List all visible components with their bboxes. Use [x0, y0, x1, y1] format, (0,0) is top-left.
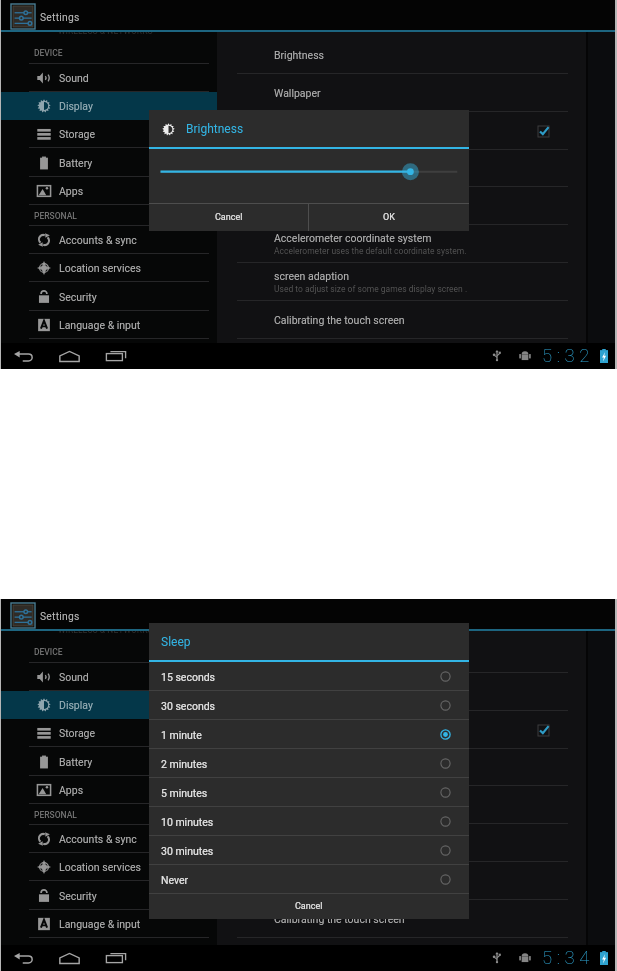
button[interactable]: Language & input: [1, 910, 217, 938]
staticText: Font size: [274, 799, 317, 811]
staticText: Apps: [59, 784, 84, 796]
button[interactable]: Home: [51, 945, 88, 971]
staticText: Cancel: [295, 901, 323, 912]
button[interactable]: Cancel: [149, 204, 308, 231]
staticText: Storage: [59, 727, 96, 739]
staticText: PERSONAL: [34, 810, 77, 820]
button[interactable]: Apps: [1, 177, 217, 205]
staticText: OK: [383, 212, 395, 223]
staticText: Settings: [40, 610, 80, 622]
button[interactable]: Daydream: [217, 748, 586, 786]
button[interactable]: screen adaption: [217, 263, 586, 301]
button[interactable]: Battery: [1, 149, 217, 177]
staticText: Accelerometer coordinate system: [274, 232, 432, 244]
button[interactable]: Sound: [1, 64, 217, 92]
staticText: Used to adjust size of some games displa…: [274, 284, 468, 294]
button[interactable]: Storage: [1, 719, 217, 747]
staticText: Location services: [59, 861, 141, 873]
staticText: WIRELESS & NETWORKS: [58, 32, 153, 36]
staticText: Accounts & sync: [59, 833, 137, 845]
button[interactable]: Back: [5, 343, 42, 369]
staticText: WIRELESS & NETWORKS: [58, 631, 153, 635]
button[interactable]: Accounts & sync: [1, 825, 217, 853]
staticText: screen adaption: [274, 270, 349, 282]
staticText: Accelerometer uses the default coordinat…: [274, 246, 467, 256]
staticText: 5:32: [542, 345, 595, 367]
button[interactable]: Brightness: [217, 36, 586, 74]
button[interactable]: OK: [309, 204, 469, 231]
button[interactable]: Security: [1, 283, 217, 311]
button[interactable]: Location services: [1, 853, 217, 881]
staticText: Wallpaper: [274, 87, 321, 99]
button[interactable]: 30 seconds: [149, 691, 469, 720]
staticText: Wallpaper: [274, 686, 321, 698]
staticText: Sound: [59, 72, 89, 84]
staticText: Brightness: [274, 49, 324, 61]
button[interactable]: Display: [1, 92, 217, 120]
staticText: 1 minute: [161, 729, 202, 741]
button[interactable]: Apps: [1, 776, 217, 804]
button[interactable]: Settings app: [11, 603, 35, 628]
staticText: Display: [59, 699, 93, 711]
button[interactable]: Home: [51, 343, 88, 369]
button[interactable]: Wallpaper: [217, 673, 586, 711]
staticText: Brightness: [186, 122, 244, 136]
staticText: Accounts & sync: [59, 234, 137, 246]
button[interactable]: Accounts & sync: [1, 226, 217, 254]
button[interactable]: Font size: [217, 786, 586, 824]
button[interactable]: Battery: [1, 748, 217, 776]
button[interactable]: 30 minutes: [149, 836, 469, 865]
staticText: 5 minutes: [161, 787, 208, 799]
button[interactable]: Daydream: [217, 149, 586, 187]
staticText: 10 minutes: [161, 816, 214, 828]
button[interactable]: Sound: [1, 663, 217, 691]
button[interactable]: Cancel: [149, 894, 469, 919]
button[interactable]: 1 minute: [149, 720, 469, 749]
button[interactable]: Wallpaper: [217, 74, 586, 112]
button[interactable]: Language & input: [1, 311, 217, 339]
staticText: Never: [161, 874, 189, 886]
button[interactable]: Calibrating the touch screen: [217, 900, 586, 938]
button[interactable]: 5 minutes: [149, 778, 469, 807]
button[interactable]: Display: [1, 691, 217, 719]
staticText: Cancel: [215, 212, 243, 223]
button[interactable]: 10 minutes: [149, 807, 469, 836]
staticText: Sleep: [161, 635, 191, 649]
button[interactable]: Accelerometer coordinate system: [217, 225, 586, 263]
staticText: Settings: [40, 11, 80, 23]
staticText: Language & input: [59, 918, 141, 930]
button[interactable]: Font size: [217, 187, 586, 225]
button[interactable]: screen adaption: [217, 862, 586, 900]
staticText: Battery: [59, 157, 93, 169]
button[interactable]: Accelerometer coordinate system: [217, 824, 586, 862]
button[interactable]: Brightness: [217, 635, 586, 673]
staticText: 30 minutes: [161, 845, 214, 857]
button[interactable]: 15 seconds: [149, 662, 469, 691]
button[interactable]: Back: [5, 945, 42, 971]
button[interactable]: Sleep: [217, 112, 586, 150]
staticText: Calibrating the touch screen: [274, 913, 405, 925]
button[interactable]: Recent apps: [97, 343, 134, 369]
button[interactable]: Settings app: [11, 4, 35, 29]
button[interactable]: Security: [1, 882, 217, 910]
staticText: 15 seconds: [161, 671, 216, 683]
button[interactable]: Calibrating the touch screen: [217, 301, 586, 339]
staticText: Display: [59, 100, 93, 112]
staticText: Apps: [59, 185, 84, 197]
staticText: Location services: [59, 262, 141, 274]
button[interactable]: Sleep: [217, 711, 586, 749]
staticText: Storage: [59, 128, 96, 140]
staticText: Security: [59, 291, 97, 303]
button[interactable]: Never: [149, 865, 469, 894]
button[interactable]: Location services: [1, 254, 217, 282]
staticText: 2 minutes: [161, 758, 208, 770]
staticText: 5:34: [542, 947, 595, 969]
button[interactable]: Recent apps: [97, 945, 134, 971]
button[interactable]: 2 minutes: [149, 749, 469, 778]
button[interactable]: Storage: [1, 120, 217, 148]
